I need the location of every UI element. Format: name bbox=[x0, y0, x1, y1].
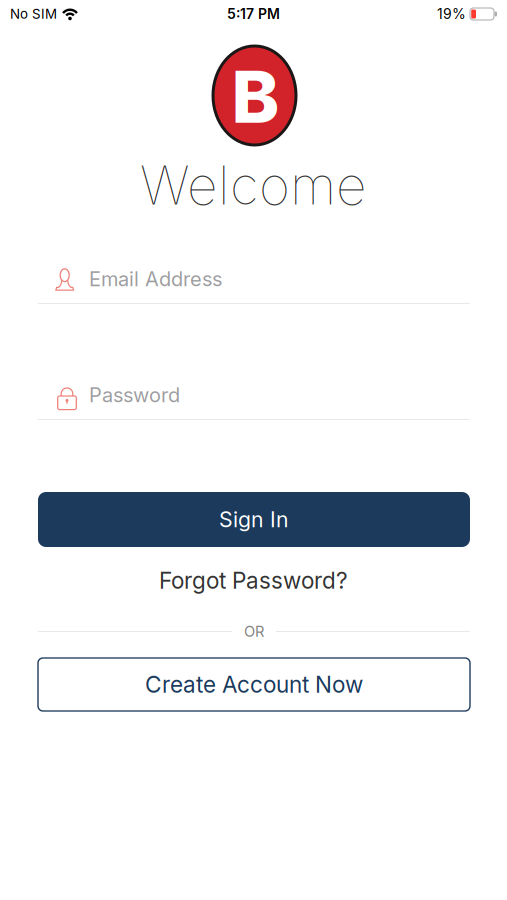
staticText: No SIM bbox=[10, 6, 57, 22]
staticText: Password bbox=[89, 383, 180, 407]
button[interactable]: Forgot Password? bbox=[159, 567, 348, 594]
staticText: Welcome bbox=[140, 153, 367, 217]
staticText: Forgot Password? bbox=[159, 567, 348, 594]
staticText: Email Address bbox=[89, 267, 222, 291]
staticText: B bbox=[231, 53, 279, 140]
button[interactable]: Password bbox=[38, 377, 470, 413]
button[interactable]: Create Account Now bbox=[38, 658, 470, 711]
staticText: Create Account Now bbox=[145, 671, 363, 698]
button[interactable]: Sign In bbox=[38, 492, 470, 547]
button[interactable]: Email Address bbox=[38, 261, 470, 297]
staticText: Sign In bbox=[219, 507, 289, 532]
staticText: 19% bbox=[437, 5, 466, 22]
staticText: 5:17 PM bbox=[227, 5, 280, 22]
staticText: OR bbox=[244, 623, 264, 640]
